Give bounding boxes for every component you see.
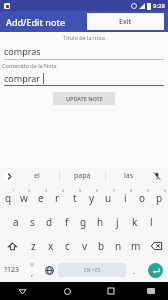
staticText: 7 — [113, 188, 116, 193]
staticText: s — [30, 215, 35, 229]
staticText: n — [115, 239, 122, 253]
button[interactable]: i — [117, 186, 134, 210]
button[interactable]: t — [66, 186, 83, 210]
staticText: e — [38, 191, 44, 205]
staticText: las — [124, 171, 134, 181]
staticText: 4 — [62, 188, 65, 193]
staticText: 1 — [12, 188, 15, 193]
staticText: b — [98, 239, 105, 253]
staticText: Título de la nota — [0, 34, 168, 41]
button[interactable]: Recents — [89, 282, 133, 300]
staticText: el — [34, 171, 40, 181]
button[interactable]: w — [16, 186, 32, 210]
button[interactable]: u — [100, 186, 117, 210]
button[interactable]: . — [126, 258, 142, 282]
button[interactable]: p — [151, 186, 168, 210]
staticText: x — [48, 239, 54, 253]
staticText: comprar — [4, 72, 41, 84]
staticText: a — [13, 215, 19, 229]
staticText: u — [105, 191, 112, 205]
button[interactable]: Change language — [40, 258, 58, 282]
staticText: d — [46, 215, 53, 229]
staticText: g — [80, 215, 87, 229]
staticText: Contenido de la Nota — [2, 62, 57, 69]
button[interactable]: papá — [60, 167, 105, 185]
staticText: l — [150, 215, 153, 229]
button[interactable]: las — [106, 167, 151, 185]
staticText: papá — [74, 171, 91, 181]
button[interactable]: b — [93, 234, 110, 258]
button[interactable]: s — [24, 210, 41, 234]
staticText: 0 — [164, 188, 167, 193]
staticText: Exit — [119, 17, 132, 27]
staticText: 6 — [96, 188, 99, 193]
button[interactable]: Home — [45, 282, 89, 300]
button[interactable]: d — [41, 210, 58, 234]
button[interactable]: Exit — [87, 13, 164, 30]
staticText: o — [139, 191, 146, 205]
button[interactable]: f — [58, 210, 75, 234]
staticText: 2 — [28, 188, 31, 193]
button[interactable]: l — [143, 210, 160, 234]
staticText: v — [82, 239, 88, 253]
staticText: h — [97, 215, 104, 229]
button[interactable]: v — [76, 234, 93, 258]
button[interactable]: j — [109, 210, 126, 234]
staticText: y — [89, 191, 95, 205]
staticText: j — [116, 215, 119, 229]
staticText: 9:28 — [153, 2, 165, 10]
staticText: i — [124, 191, 127, 205]
staticText: c — [65, 239, 70, 253]
staticText: p — [156, 191, 163, 205]
staticText: k — [132, 215, 138, 229]
button[interactable]: g — [75, 210, 92, 234]
button[interactable]: ?123 — [0, 258, 24, 282]
staticText: ?123 — [4, 265, 20, 275]
button[interactable]: EN • ES — [58, 263, 126, 277]
button[interactable]: e — [32, 186, 49, 210]
staticText: t — [73, 191, 77, 205]
staticText: 8 — [130, 188, 133, 193]
button[interactable]: r — [49, 186, 66, 210]
button[interactable]: q — [0, 186, 16, 210]
button[interactable]: el — [15, 167, 59, 185]
button[interactable]: Hide keyboard — [133, 282, 168, 300]
staticText: UPDATE NOTE — [66, 95, 103, 102]
button[interactable]: Back — [0, 282, 45, 300]
button[interactable]: a — [8, 210, 24, 234]
button[interactable]: x — [42, 234, 59, 258]
staticText: 5 — [79, 188, 82, 193]
button[interactable]: o — [134, 186, 151, 210]
staticText: q — [5, 191, 12, 205]
button[interactable]: Emoji and comma — [24, 258, 40, 282]
staticText: f — [65, 215, 69, 229]
button[interactable]: m — [127, 234, 144, 258]
staticText: 9 — [147, 188, 150, 193]
button[interactable]: UPDATE NOTE — [53, 92, 115, 105]
staticText: Add/Edit note — [6, 16, 66, 28]
button[interactable]: Voice input — [151, 170, 163, 182]
button[interactable]: h — [92, 210, 109, 234]
button[interactable]: Expand suggestions — [4, 171, 15, 182]
staticText: z — [31, 239, 36, 253]
staticText: 3 — [45, 188, 48, 193]
button[interactable]: k — [126, 210, 143, 234]
button[interactable]: Enter — [142, 258, 168, 282]
staticText: r — [55, 191, 60, 205]
staticText: m — [131, 239, 141, 253]
staticText: EN • ES — [84, 267, 101, 274]
button[interactable]: Backspace — [144, 234, 168, 258]
button[interactable]: n — [110, 234, 127, 258]
staticText: , — [31, 267, 34, 278]
staticText: . — [133, 265, 136, 276]
button[interactable]: c — [59, 234, 76, 258]
button[interactable]: z — [25, 234, 42, 258]
staticText: ☺ — [30, 262, 35, 267]
staticText: w — [20, 191, 28, 205]
button[interactable]: Shift — [0, 234, 25, 258]
button[interactable]: y — [83, 186, 100, 210]
staticText: compras — [4, 45, 41, 57]
